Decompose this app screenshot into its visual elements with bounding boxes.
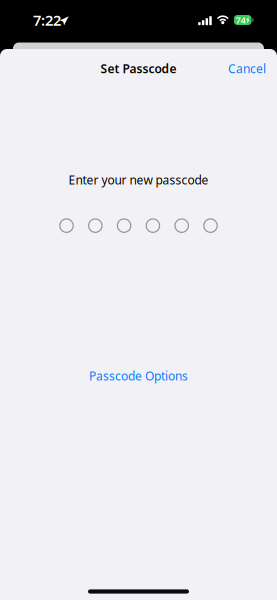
staticText: 74: [236, 14, 246, 26]
staticText: Passcode Options: [89, 368, 188, 384]
button[interactable]: Passcode Options: [77, 360, 200, 391]
staticText: Cancel: [228, 60, 266, 76]
staticText: Enter your new passcode: [68, 172, 208, 188]
staticText: Set Passcode: [100, 60, 176, 76]
staticText: 7:22: [33, 10, 61, 30]
button[interactable]: Cancel: [220, 53, 274, 84]
